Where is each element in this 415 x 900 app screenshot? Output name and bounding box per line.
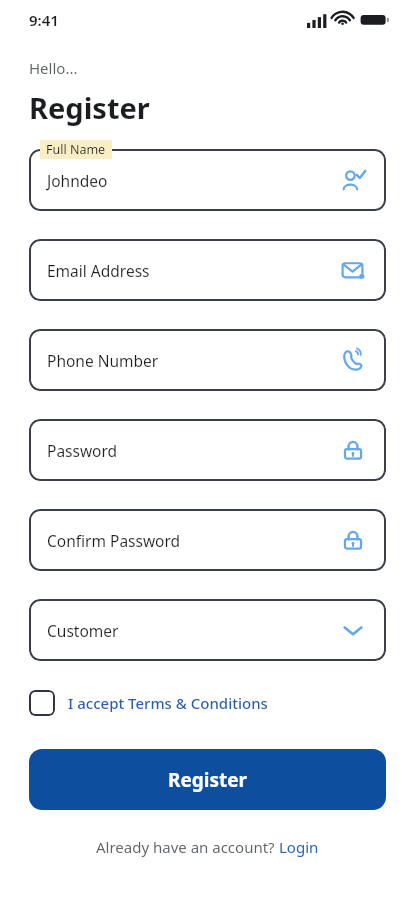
staticText: Hello... — [29, 58, 78, 78]
other: Password — [340, 437, 366, 463]
staticText: Phone Number — [47, 350, 340, 371]
staticText: I accept Terms & Conditions — [68, 693, 268, 713]
button[interactable]: Customer — [29, 599, 386, 661]
button[interactable]: Phone Number — [29, 329, 386, 391]
staticText: Already have an account? — [96, 837, 279, 857]
staticText: Confirm Password — [47, 530, 340, 551]
other: Name verified — [340, 167, 366, 193]
staticText: Customer — [47, 620, 340, 641]
staticText: Full Name — [46, 141, 106, 158]
button[interactable]: Email Address — [29, 239, 386, 301]
other: Open dropdown — [340, 617, 366, 643]
other: Email — [340, 257, 366, 283]
button[interactable]: Login — [279, 837, 319, 857]
staticText: Login — [279, 837, 319, 857]
button[interactable]: I accept Terms & Conditions — [29, 688, 268, 718]
staticText: Register — [29, 88, 150, 127]
staticText: Johndeo — [47, 170, 340, 191]
staticText: Password — [47, 440, 340, 461]
other: Phone — [340, 347, 366, 373]
button[interactable]: Register — [29, 749, 386, 810]
staticText: Register — [168, 767, 248, 793]
other: Password — [340, 527, 366, 553]
staticText: Email Address — [47, 260, 340, 281]
staticText: 9:41 — [29, 10, 59, 30]
button[interactable]: Password — [29, 419, 386, 481]
button[interactable]: Confirm Password — [29, 509, 386, 571]
button[interactable]: Johndeo — [29, 149, 386, 211]
